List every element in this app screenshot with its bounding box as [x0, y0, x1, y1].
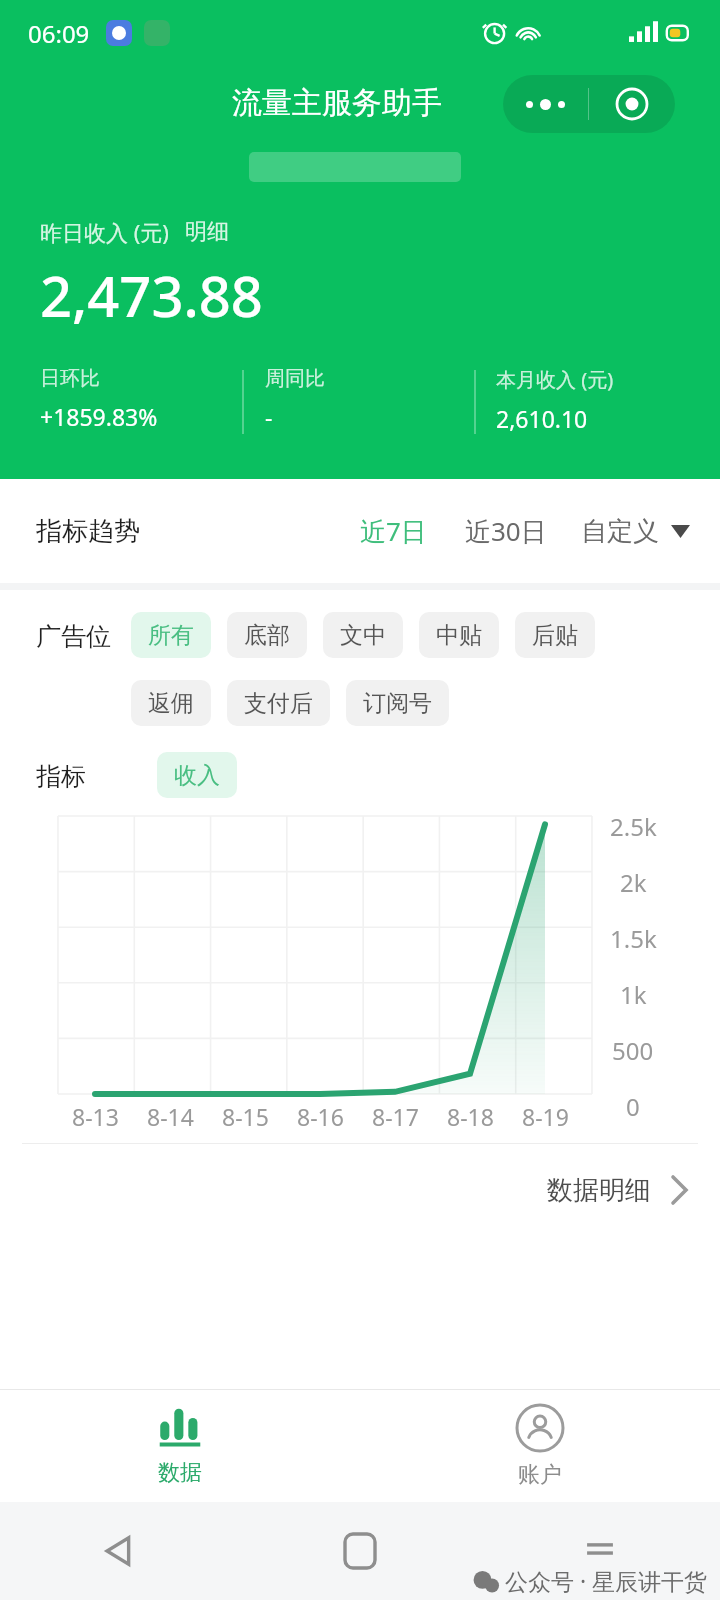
other: Back [102, 1533, 138, 1569]
staticText: 8-18 [447, 1101, 494, 1132]
staticText: 8-15 [222, 1101, 269, 1132]
staticText: 8-19 [522, 1101, 569, 1132]
staticText: 广告位 [36, 621, 111, 652]
button[interactable]: 数据 [0, 1390, 360, 1502]
button[interactable]: 订阅号 [346, 680, 449, 726]
staticText: 近30日 [465, 513, 547, 549]
staticText: 周同比 [265, 366, 325, 391]
staticText: 指标 [36, 761, 86, 792]
staticText: 2,610.10 [496, 403, 588, 434]
staticText: 明细 [185, 218, 229, 246]
staticText: 数据明细 [547, 1174, 651, 1207]
button[interactable]: 近7日 [352, 503, 435, 559]
staticText: 昨日收入 (元) [40, 217, 169, 247]
other: Recents [583, 1534, 617, 1568]
staticText: 返佣 [148, 689, 194, 718]
button[interactable]: Menu options [503, 75, 675, 133]
staticText: 1k [620, 978, 647, 1011]
button[interactable]: 中贴 [419, 612, 499, 658]
button[interactable]: 后贴 [515, 612, 595, 658]
staticText: 数据 [158, 1459, 202, 1487]
staticText: 8-14 [147, 1101, 194, 1132]
staticText: 指标趋势 [36, 515, 140, 548]
staticText: +1859.83% [40, 401, 158, 432]
staticText: 支付后 [244, 689, 313, 718]
staticText: 账户 [518, 1461, 562, 1489]
staticText: 本月收入 (元) [496, 366, 614, 393]
button[interactable]: 底部 [227, 612, 307, 658]
staticText: 1.5k [610, 922, 657, 955]
staticText: 中贴 [436, 621, 482, 650]
staticText: 近7日 [360, 513, 427, 549]
button[interactable]: 近30日 [457, 503, 555, 559]
button[interactable]: 支付后 [227, 680, 330, 726]
staticText: 8-16 [297, 1101, 344, 1132]
button[interactable]: 所有 [131, 612, 211, 658]
staticText: 流量主服务助手 [232, 84, 442, 122]
staticText: 2k [620, 866, 647, 899]
staticText: 8-13 [72, 1101, 119, 1132]
button[interactable]: 明细 [185, 218, 229, 246]
staticText: 订阅号 [363, 689, 432, 718]
staticText: - [265, 401, 273, 432]
staticText: 收入 [174, 761, 220, 790]
staticText: 公众号 · 星辰讲干货 [505, 1565, 708, 1596]
button[interactable]: 数据明细 [0, 1144, 720, 1236]
staticText: 8-17 [372, 1101, 419, 1132]
button[interactable]: 返佣 [131, 680, 211, 726]
staticText: 2,473.88 [40, 257, 263, 333]
other: Home [345, 1534, 375, 1568]
button[interactable]: 收入 [157, 752, 237, 798]
staticText: 日环比 [40, 366, 100, 391]
staticText: 自定义 [581, 515, 659, 548]
staticText: 后贴 [532, 621, 578, 650]
staticText: 文中 [340, 621, 386, 650]
staticText: 所有 [148, 621, 194, 650]
button[interactable]: 账户 [360, 1390, 720, 1502]
staticText: 06:09 [28, 17, 90, 50]
staticText: 底部 [244, 621, 290, 650]
staticText: 0 [626, 1090, 640, 1123]
staticText: 2.5k [610, 810, 657, 843]
staticText: 500 [612, 1034, 654, 1067]
button[interactable]: 自定义 [577, 505, 694, 558]
button[interactable]: 文中 [323, 612, 403, 658]
